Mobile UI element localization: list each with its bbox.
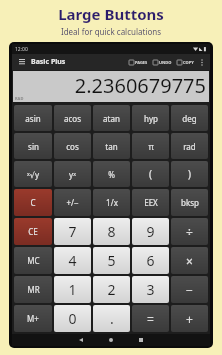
button[interactable]: deg — [171, 105, 208, 131]
button[interactable]: = — [132, 305, 169, 332]
staticText: π — [148, 141, 154, 152]
staticText: atan — [103, 113, 120, 124]
staticText: ( — [149, 167, 152, 181]
button[interactable]: COPY — [176, 60, 195, 65]
staticText: hyp — [144, 113, 158, 124]
button[interactable]: M+ — [14, 305, 52, 332]
staticText: UNDO — [159, 60, 172, 65]
staticText: 9 — [146, 222, 155, 241]
button[interactable]: 6 — [132, 247, 169, 274]
button[interactable]: ) — [171, 161, 208, 187]
button[interactable]: acos — [54, 105, 91, 131]
staticText: COPY — [183, 60, 194, 65]
button[interactable]: 7 — [54, 218, 91, 245]
button[interactable]: % — [93, 161, 130, 187]
staticText: MC — [27, 255, 40, 266]
button[interactable]: cos — [54, 133, 91, 159]
button[interactable]: CE — [14, 218, 52, 245]
staticText: 2 — [107, 280, 116, 299]
staticText: Large Buttons — [0, 4, 222, 24]
staticText: 6 — [146, 251, 155, 270]
staticText: C — [30, 197, 36, 208]
button[interactable]: C — [14, 189, 52, 216]
staticText: % — [108, 169, 115, 180]
button[interactable]: EEX — [132, 189, 169, 216]
button[interactable]: 3 — [132, 276, 169, 303]
button[interactable]: 0 — [54, 305, 91, 332]
button[interactable]: ˣ√y — [14, 161, 52, 187]
staticText: 12:00 — [15, 46, 28, 53]
button[interactable]: − — [171, 276, 208, 303]
staticText: 8 — [107, 222, 116, 241]
staticText: 1/x — [106, 197, 118, 208]
button[interactable]: MC — [14, 247, 52, 274]
staticText: Ideal for quick calculations — [0, 26, 222, 37]
staticText: tan — [105, 141, 118, 152]
button[interactable]: 1/x — [93, 189, 130, 216]
staticText: deg — [182, 113, 197, 124]
button[interactable]: More options — [198, 58, 206, 66]
button[interactable]: 1 — [54, 276, 91, 303]
button[interactable]: bksp — [171, 189, 208, 216]
staticText: 4 — [68, 251, 77, 270]
button[interactable]: × — [171, 247, 208, 274]
button[interactable]: +/− — [54, 189, 91, 216]
button[interactable]: 2 — [93, 276, 130, 303]
staticText: asin — [25, 113, 41, 124]
button[interactable]: 8 — [93, 218, 130, 245]
button[interactable]: tan — [93, 133, 130, 159]
staticText: MR — [27, 284, 40, 295]
staticText: 1 — [68, 280, 77, 299]
staticText: sin — [28, 141, 39, 152]
staticText: ˣ√y — [27, 169, 39, 180]
button[interactable]: yˣ — [54, 161, 91, 187]
button[interactable]: Menu — [16, 56, 28, 68]
staticText: . — [110, 309, 114, 328]
staticText: acos — [64, 113, 81, 124]
button[interactable]: 4 — [54, 247, 91, 274]
button[interactable]: Recent apps — [126, 334, 156, 346]
button[interactable]: 5 — [93, 247, 130, 274]
staticText: 5 — [107, 251, 116, 270]
staticText: cos — [66, 141, 79, 152]
staticText: yˣ — [69, 169, 76, 180]
staticText: bksp — [181, 197, 199, 208]
staticText: +/− — [66, 197, 79, 208]
staticText: 3 — [146, 280, 155, 299]
staticText: 2.2360679775 — [13, 72, 206, 99]
button[interactable]: hyp — [132, 105, 169, 131]
staticText: ) — [188, 167, 191, 181]
staticText: = — [147, 311, 154, 327]
staticText: 0 — [68, 309, 77, 328]
staticText: − — [186, 282, 193, 298]
button[interactable]: MR — [14, 276, 52, 303]
button[interactable]: rad — [171, 133, 208, 159]
button[interactable]: Back — [66, 334, 96, 346]
button[interactable]: sin — [14, 133, 52, 159]
button[interactable]: atan — [93, 105, 130, 131]
staticText: rad — [183, 141, 196, 152]
button[interactable]: + — [171, 305, 208, 332]
button[interactable]: asin — [14, 105, 52, 131]
button[interactable]: UNDO — [152, 60, 173, 65]
button[interactable]: π — [132, 133, 169, 159]
button[interactable]: Home — [96, 334, 126, 346]
staticText: 7 — [68, 222, 77, 241]
staticText: EEX — [144, 197, 158, 208]
staticText: + — [186, 311, 193, 327]
staticText: PAGES — [135, 60, 148, 65]
staticText: CE — [28, 226, 38, 237]
button[interactable]: 9 — [132, 218, 169, 245]
button[interactable]: ( — [132, 161, 169, 187]
button[interactable]: PAGES — [128, 60, 149, 65]
staticText: Basic Plus — [31, 57, 66, 67]
staticText: ÷ — [186, 224, 193, 240]
button[interactable]: . — [93, 305, 130, 332]
staticText: × — [186, 253, 193, 269]
staticText: RAD — [15, 96, 24, 101]
staticText: M+ — [27, 313, 39, 324]
button[interactable]: ÷ — [171, 218, 208, 245]
